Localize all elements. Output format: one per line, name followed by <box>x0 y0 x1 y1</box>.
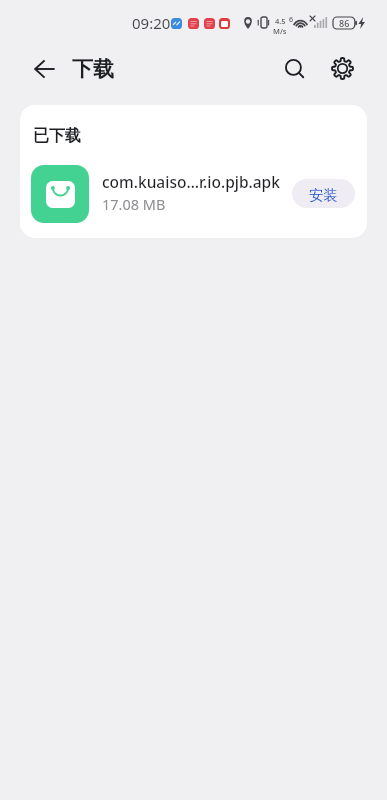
button[interactable]: Settings <box>318 44 366 92</box>
button[interactable]: Back <box>20 45 68 93</box>
staticText: 17.08 MB <box>102 194 166 214</box>
staticText: 安装 <box>309 186 338 204</box>
staticText: 86 <box>339 17 350 29</box>
staticText: 6 <box>289 15 294 25</box>
staticText: 09:20 <box>132 13 171 33</box>
staticText: M/s <box>273 26 287 36</box>
button[interactable]: Search <box>270 44 318 92</box>
staticText: 已下载 <box>33 126 81 146</box>
button[interactable]: com.kuaiso…r.io.pjb.apk <box>20 158 367 230</box>
staticText: 4.5 <box>275 16 286 26</box>
button[interactable]: 安装 <box>292 179 355 208</box>
staticText: 下载 <box>72 56 114 82</box>
staticText: com.kuaiso…r.io.pjb.apk <box>102 171 280 192</box>
